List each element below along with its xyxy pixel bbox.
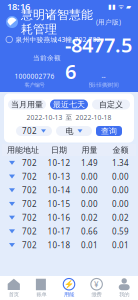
staticText: 客户编号 — [24, 82, 44, 88]
staticText: 最近七天 — [53, 100, 85, 109]
staticText: 查询 — [101, 126, 117, 136]
button[interactable]: 最近七天 — [50, 99, 88, 109]
button[interactable]: 我的 — [110, 276, 138, 300]
staticText: 10-15 — [47, 199, 70, 209]
staticText: 2022-10-13 — [26, 113, 62, 122]
button[interactable]: 查询 — [96, 126, 122, 136]
staticText: 0.00 — [81, 185, 98, 195]
staticText: 缴费 — [92, 291, 102, 298]
button[interactable]: ⚡ — [55, 276, 83, 300]
staticText: 0.59 — [112, 226, 129, 237]
button[interactable]: 702 — [2, 183, 136, 197]
button[interactable]: 702 — [16, 126, 52, 136]
staticText: 0.02 — [81, 212, 98, 223]
button[interactable]: 账单 — [28, 276, 55, 300]
button[interactable]: 自定义 — [92, 99, 130, 109]
button[interactable]: 电 — [56, 126, 92, 136]
staticText: 用能 — [64, 291, 74, 298]
staticText: 用量 — [81, 145, 97, 155]
button[interactable]: 702 — [2, 156, 136, 170]
staticText: 0.66 — [81, 226, 98, 237]
staticText: 首页 — [9, 291, 19, 298]
staticText: 0.01 — [81, 240, 98, 250]
staticText: 1.49 — [81, 157, 98, 168]
staticText: 702 — [22, 171, 37, 182]
staticText: 10-13 — [47, 171, 70, 182]
staticText: 当月用量 — [11, 100, 43, 109]
staticText: 金额 — [112, 145, 128, 155]
button[interactable]: 702 — [2, 170, 136, 183]
button[interactable]: 702 — [2, 238, 136, 252]
staticText: 10-16 — [47, 212, 70, 223]
button[interactable]: 702 — [2, 211, 136, 224]
button[interactable]: 702 — [2, 224, 136, 238]
staticText: 预计到期时间 — [88, 82, 118, 88]
staticText: 慧明诸智慧能耗管理 — [21, 7, 93, 37]
staticText: 1000002776 — [14, 72, 54, 81]
staticText: 702 — [22, 199, 37, 209]
staticText: 0.00 — [81, 199, 98, 209]
staticText: 当前余额 — [33, 54, 61, 62]
staticText: 10-18 — [47, 240, 70, 250]
staticText: 702 — [22, 212, 37, 223]
staticText: 用能地址 — [7, 145, 39, 155]
staticText: -8477.56 — [65, 31, 132, 84]
staticText: (用户版) — [96, 18, 121, 26]
staticText: 10-17 — [47, 226, 70, 237]
button[interactable]: ¥ — [83, 276, 110, 300]
staticText: 10-14 — [47, 185, 70, 195]
staticText: ¥ — [94, 279, 99, 289]
staticText: 702 — [22, 185, 37, 195]
staticText: 1.34 — [112, 157, 129, 168]
staticText: 我的 — [119, 291, 129, 298]
staticText: 账单 — [36, 291, 46, 298]
staticText: 702 — [22, 240, 37, 250]
staticText: 0.01 — [112, 240, 129, 250]
staticText: 10-12 — [47, 157, 70, 168]
staticText: 自定义 — [99, 100, 123, 109]
staticText: 702 — [22, 226, 37, 237]
staticText: ▮▮ ᯤ ▰ — [108, 2, 131, 11]
staticText: 电 — [65, 126, 73, 136]
staticText: 0.00 — [112, 171, 129, 182]
button[interactable]: 702 — [2, 197, 136, 211]
staticText: 0.02 — [112, 212, 129, 223]
staticText: 日期 — [51, 145, 67, 155]
staticText: 18:16 — [7, 0, 30, 13]
button[interactable]: 当月用量 — [8, 99, 46, 109]
staticText: 2022-10-18 — [75, 113, 111, 122]
button[interactable]: 首页 — [0, 276, 28, 300]
staticText: 0.00 — [81, 171, 98, 182]
staticText: 0.00 — [112, 185, 129, 195]
staticText: 702 — [22, 126, 37, 136]
staticText: 至 — [65, 113, 72, 122]
staticText: 泉州中骏燕城43幢-702-702 — [15, 35, 100, 44]
staticText: ⚡ — [64, 280, 74, 289]
staticText: 0.00 — [112, 199, 129, 209]
staticText: 702 — [22, 157, 37, 168]
staticText: -- — [101, 72, 105, 81]
